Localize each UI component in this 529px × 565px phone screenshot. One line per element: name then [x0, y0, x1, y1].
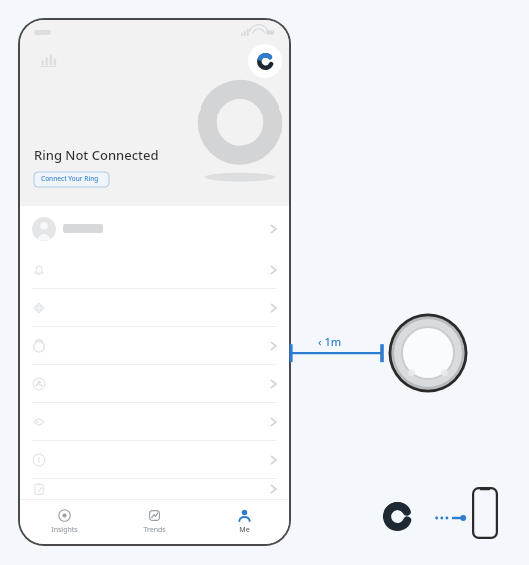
- button[interactable]: Trends: [109, 500, 199, 544]
- button[interactable]: Me: [199, 500, 289, 544]
- staticText: Connect Your Ring: [41, 174, 99, 183]
- button[interactable]: [20, 206, 289, 251]
- button[interactable]: Insights: [20, 500, 109, 544]
- staticText: Ring Not Connected: [34, 146, 159, 164]
- button[interactable]: Connect Your Ring: [34, 171, 106, 186]
- staticText: Me: [239, 525, 250, 535]
- button[interactable]: Ring status: [248, 44, 282, 78]
- button[interactable]: Surveys: [20, 479, 289, 499]
- button[interactable]: Statistics: [31, 44, 65, 78]
- other: Smart ring: [386, 311, 470, 395]
- other: Phone: [472, 487, 498, 539]
- staticText: Insights: [51, 525, 78, 535]
- other: Ring: [382, 501, 413, 532]
- staticText: Trends: [143, 525, 166, 535]
- staticText: ‹ 1m: [318, 334, 342, 349]
